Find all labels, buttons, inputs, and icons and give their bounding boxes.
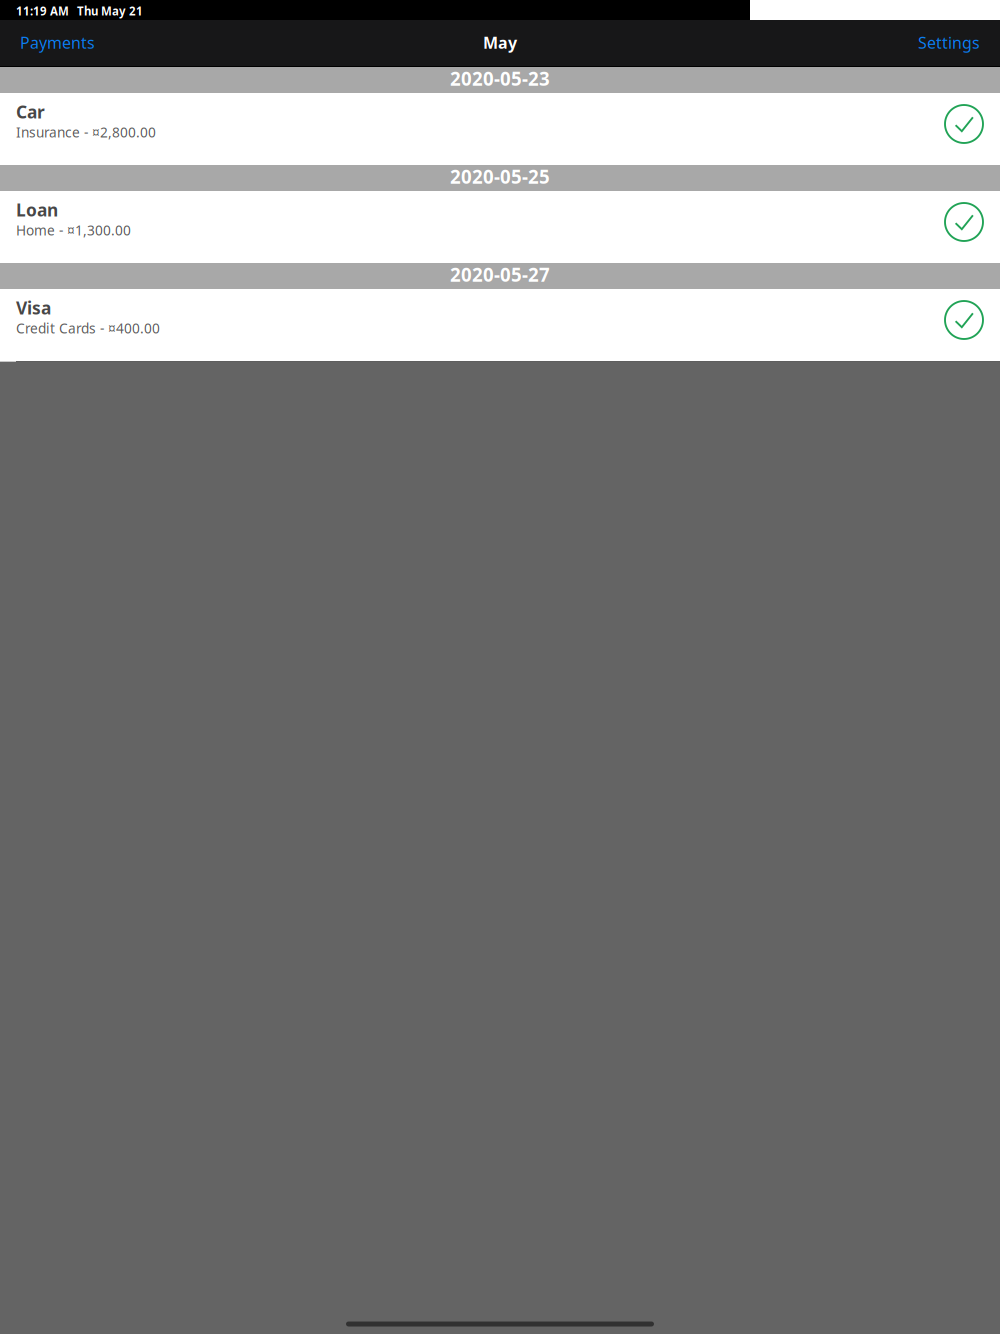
staticText: Settings [918,32,980,53]
button[interactable]: Payments [0,22,109,65]
staticText: 2020-05-25 [450,164,550,189]
staticText: Thu May 21 [77,3,143,19]
staticText: Car [16,100,45,124]
button[interactable]: Visa [0,289,1000,361]
button[interactable]: Settings [904,22,1000,65]
button[interactable]: Car [0,93,1000,165]
staticText: May [483,32,517,53]
button[interactable]: Loan [0,191,1000,263]
staticText: 11:19 AM [16,3,69,19]
staticText: 2020-05-23 [450,66,550,91]
staticText: Credit Cards - ¤400.00 [16,319,160,338]
staticText: Loan [16,198,58,222]
staticText: Visa [16,296,51,320]
staticText: Home - ¤1,300.00 [16,221,131,240]
staticText: Insurance - ¤2,800.00 [16,123,156,142]
staticText: Payments [20,32,95,53]
staticText: 2020-05-27 [450,262,550,287]
